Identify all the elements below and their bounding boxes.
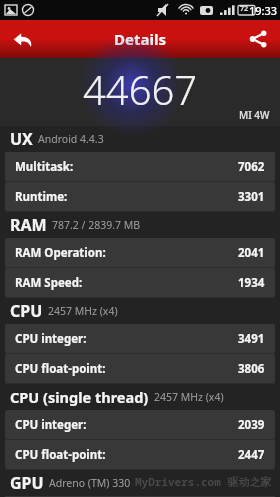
staticText: 44667 [83,62,198,116]
staticText: CPU integer: [15,331,87,347]
staticText: Android 4.4.3 [38,132,104,146]
button[interactable]: RAM Speed: [5,268,275,297]
staticText: CPU integer: [15,417,87,433]
staticText: RAM Speed: [15,275,83,291]
button[interactable]: CPU float-point: [5,354,275,383]
staticText: 3491 [238,331,265,347]
button[interactable]: CPU integer: [5,324,275,353]
staticText: Multitask: [15,159,74,175]
staticText: RAM [10,214,47,236]
button[interactable]: Back [0,20,46,58]
button[interactable]: Share [236,20,280,58]
staticText: CPU float-point: [15,447,106,463]
staticText: CPU float-point: [15,361,106,377]
staticText: CPU (single thread) [10,387,149,407]
staticText: MyDrivers.com 驱动之家 [135,474,272,489]
staticText: GPU [10,472,44,494]
staticText: 2457 MHz (x4) [154,390,224,404]
staticText: 2447 [238,447,265,463]
staticText: 3301 [238,189,265,205]
staticText: 72 [240,4,249,14]
staticText: Details [114,29,166,49]
staticText: CPU [10,300,43,322]
staticText: 7062 [238,159,265,175]
staticText: UX [10,128,33,150]
staticText: 1934 [238,275,265,291]
staticText: Runtime: [15,189,68,205]
staticText: 2039 [238,417,265,433]
staticText: 19:33 [249,3,278,18]
staticText: 2457 MHz (x4) [48,304,118,318]
staticText: 3806 [238,361,265,377]
button[interactable]: CPU float-point: [5,440,275,469]
staticText: Adreno (TM) 330 [49,476,131,490]
button[interactable]: Multitask: [5,152,275,181]
staticText: 787.2 / 2839.7 MB [52,218,141,232]
button[interactable]: Runtime: [5,182,275,211]
staticText: RAM Operation: [15,245,106,261]
button[interactable]: CPU integer: [5,410,275,439]
staticText: 2041 [238,245,265,261]
staticText: MI 4W [239,108,270,122]
button[interactable]: RAM Operation: [5,238,275,267]
